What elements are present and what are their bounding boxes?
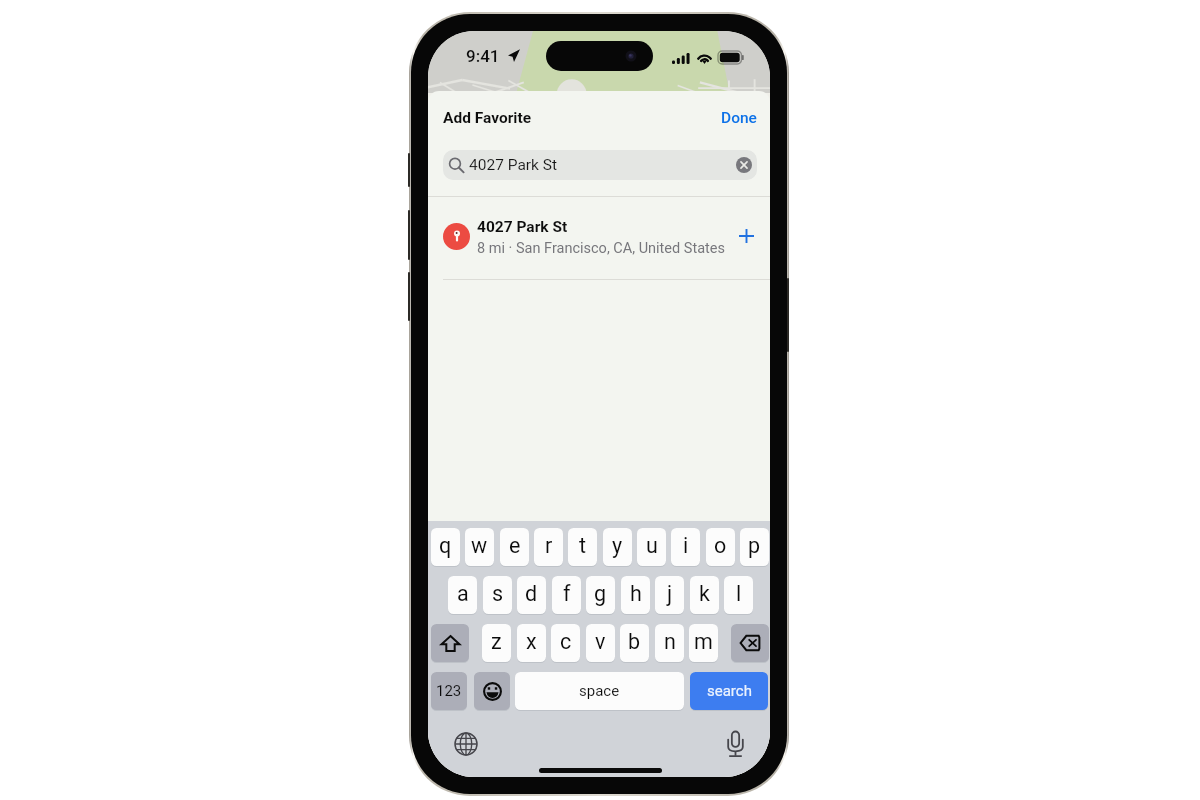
staticText: h xyxy=(630,581,642,606)
button[interactable]: e xyxy=(500,528,529,566)
staticText: space xyxy=(579,682,620,700)
staticText: q xyxy=(439,533,452,558)
button[interactable]: Backspace xyxy=(731,624,769,662)
button[interactable]: Change keyboard xyxy=(454,732,478,756)
button[interactable]: Dictate xyxy=(727,731,744,757)
button[interactable]: v xyxy=(586,624,615,662)
staticText: b xyxy=(628,629,641,654)
button[interactable]: Add favorite xyxy=(731,221,761,251)
button[interactable]: m xyxy=(689,624,718,662)
button[interactable]: 4027 Park St xyxy=(428,197,770,279)
staticText: k xyxy=(699,581,710,606)
button[interactable]: a xyxy=(448,576,477,614)
staticText: j xyxy=(667,581,673,606)
staticText: f xyxy=(563,581,571,606)
button[interactable]: n xyxy=(655,624,684,662)
staticText: 8 mi · San Francisco, CA, United States xyxy=(477,240,725,257)
staticText: d xyxy=(525,581,538,606)
button[interactable]: x xyxy=(517,624,546,662)
staticText: a xyxy=(457,581,469,606)
button[interactable]: 123 xyxy=(431,672,467,710)
button[interactable]: c xyxy=(551,624,580,662)
staticText: g xyxy=(594,581,607,606)
button[interactable]: s xyxy=(483,576,512,614)
staticText: t xyxy=(579,533,587,558)
staticText: r xyxy=(545,533,553,558)
button[interactable]: 4027 Park St xyxy=(443,150,757,180)
staticText: 9:41 xyxy=(466,46,500,66)
button[interactable]: b xyxy=(620,624,649,662)
button[interactable]: l xyxy=(724,576,753,614)
button[interactable]: Shift xyxy=(431,624,469,662)
button[interactable]: k xyxy=(690,576,719,614)
button[interactable]: search xyxy=(690,672,768,710)
button[interactable]: z xyxy=(482,624,511,662)
button[interactable]: p xyxy=(740,528,769,566)
staticText: v xyxy=(595,629,606,654)
staticText: n xyxy=(664,629,676,654)
staticText: 4027 Park St xyxy=(469,156,558,174)
button[interactable]: t xyxy=(568,528,597,566)
button[interactable]: Clear text xyxy=(736,157,752,173)
staticText: 4027 Park St xyxy=(477,218,568,236)
button[interactable]: f xyxy=(552,576,581,614)
button[interactable]: q xyxy=(431,528,460,566)
button[interactable]: Done xyxy=(708,103,770,133)
staticText: Add Favorite xyxy=(443,109,532,127)
staticText: search xyxy=(707,682,752,700)
button[interactable]: y xyxy=(603,528,632,566)
staticText: e xyxy=(509,533,521,558)
button[interactable]: g xyxy=(586,576,615,614)
staticText: m xyxy=(694,629,713,654)
button[interactable]: w xyxy=(465,528,494,566)
staticText: c xyxy=(560,629,572,654)
staticText: y xyxy=(612,533,623,558)
staticText: x xyxy=(526,629,537,654)
button[interactable]: i xyxy=(671,528,700,566)
button[interactable]: j xyxy=(655,576,684,614)
staticText: o xyxy=(714,533,727,558)
staticText: 123 xyxy=(436,682,462,700)
staticText: Done xyxy=(721,109,757,127)
staticText: z xyxy=(491,629,502,654)
staticText: l xyxy=(736,581,742,606)
button[interactable]: space xyxy=(515,672,684,710)
button[interactable]: u xyxy=(637,528,666,566)
button[interactable]: h xyxy=(621,576,650,614)
button[interactable]: o xyxy=(706,528,735,566)
button[interactable]: Emoji xyxy=(474,672,510,710)
button[interactable]: d xyxy=(517,576,546,614)
staticText: p xyxy=(748,533,761,558)
button[interactable]: r xyxy=(534,528,563,566)
staticText: s xyxy=(492,581,504,606)
staticText: w xyxy=(471,533,488,558)
staticText: i xyxy=(683,533,689,558)
staticText: u xyxy=(646,533,658,558)
